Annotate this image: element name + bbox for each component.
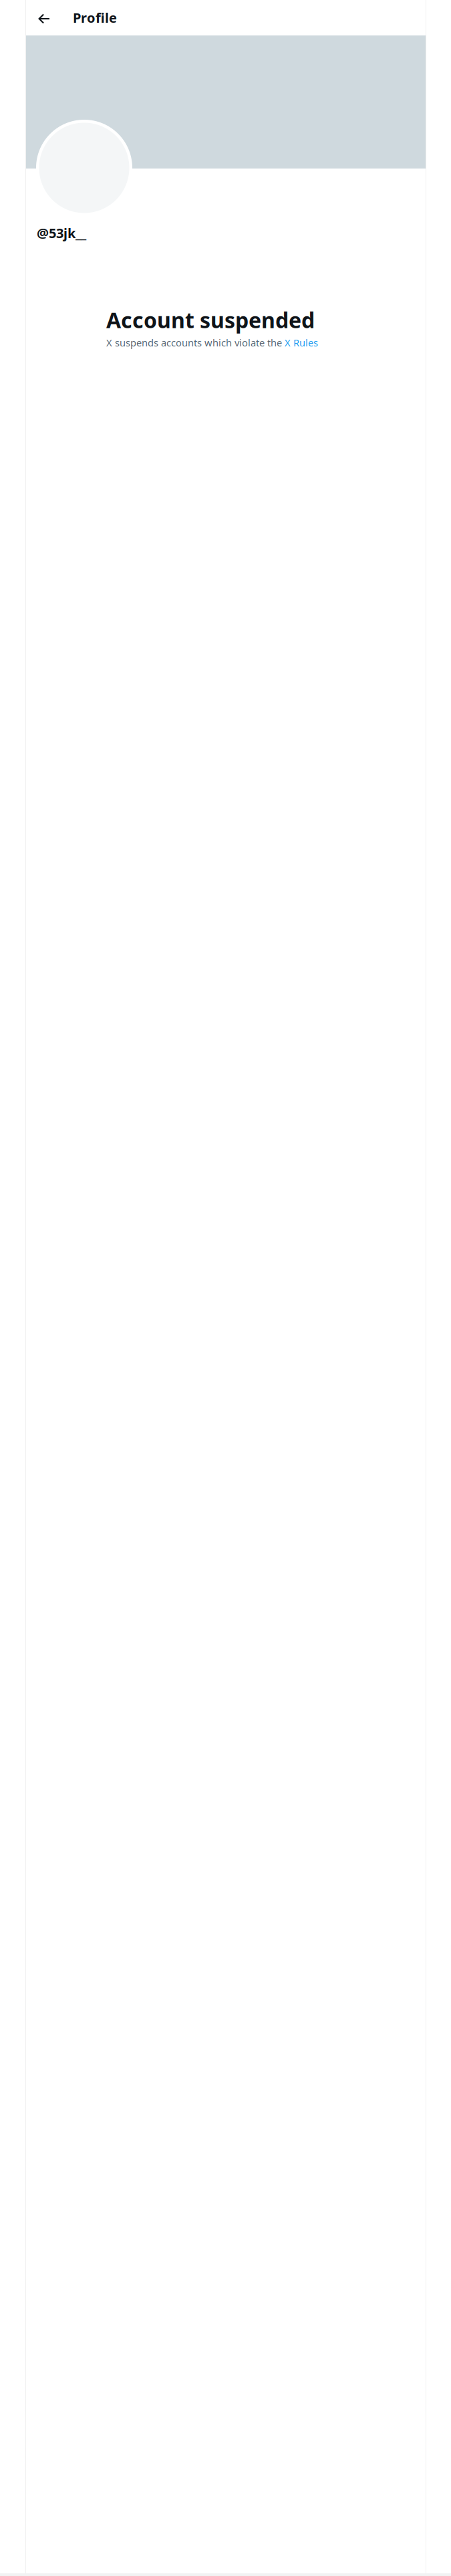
- staticText: @53jk__: [37, 224, 86, 242]
- staticText: Profile: [73, 9, 117, 26]
- staticText: X Rules: [285, 336, 318, 349]
- staticText: X suspends accounts which violate the: [106, 336, 285, 349]
- staticText: Account suspended: [106, 306, 315, 334]
- button[interactable]: Back: [33, 7, 55, 30]
- button[interactable]: X Rules: [285, 336, 318, 349]
